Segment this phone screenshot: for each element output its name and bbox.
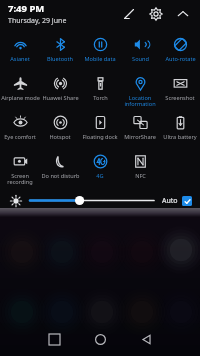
staticText: Auto [162, 196, 178, 206]
staticText: Screen recording [7, 172, 33, 186]
button[interactable]: Brightness slider [30, 193, 154, 208]
button[interactable]: MirrorShare [120, 111, 160, 141]
staticText: Location information [124, 94, 156, 108]
staticText: Sound [132, 55, 149, 63]
button[interactable]: Floating dock [80, 111, 120, 141]
staticText: NFC [135, 172, 146, 180]
button[interactable]: Settings [146, 4, 166, 24]
button[interactable]: Huawei Share [40, 72, 80, 102]
button[interactable]: Bluetooth [40, 33, 80, 63]
staticText: Airplane mode [1, 94, 40, 102]
button[interactable]: Torch [80, 72, 120, 102]
button[interactable]: Edit [119, 4, 139, 24]
staticText: Hotspot [49, 133, 71, 141]
staticText: Bluetooth [47, 55, 73, 63]
button[interactable]: Do not disturb [40, 150, 80, 180]
staticText: Thursday, 29 June [8, 16, 67, 26]
button[interactable]: Auto-rotate [160, 33, 200, 63]
button[interactable]: Airplane mode [0, 72, 40, 102]
button[interactable]: Eye comfort [0, 111, 40, 141]
button[interactable]: Mobile data [80, 33, 120, 63]
button[interactable]: Back [123, 322, 169, 356]
button[interactable]: NFC [120, 150, 160, 180]
staticText: Auto-rotate [165, 55, 196, 63]
button[interactable]: Asianet [0, 33, 40, 63]
staticText: Torch [93, 94, 108, 102]
button[interactable]: Screenshot [160, 72, 200, 102]
staticText: Eye comfort [4, 133, 36, 141]
staticText: 4G [96, 172, 104, 180]
staticText: Screenshot [165, 94, 195, 102]
button[interactable]: Ultra battery [160, 111, 200, 141]
staticText: Ultra battery [163, 133, 197, 141]
button[interactable]: Location information [120, 72, 160, 108]
button[interactable]: Collapse [173, 4, 193, 24]
staticText: Asianet [10, 55, 30, 63]
button[interactable]: Home [77, 322, 123, 356]
button[interactable]: 4G [80, 150, 120, 180]
button[interactable]: Recent apps [31, 322, 77, 356]
staticText: Floating dock [82, 133, 118, 141]
button[interactable]: Screen recording [0, 150, 40, 186]
staticText: Huawei Share [42, 94, 79, 102]
button[interactable]: Sound [120, 33, 160, 63]
staticText: 7:49 PM [8, 2, 45, 15]
staticText: Do not disturb [41, 172, 80, 180]
staticText: MirrorShare [124, 133, 156, 141]
staticText: Mobile data [84, 55, 116, 63]
button[interactable]: Brightness [9, 194, 23, 208]
button[interactable]: Hotspot [40, 111, 80, 141]
button[interactable]: Auto [162, 196, 192, 206]
